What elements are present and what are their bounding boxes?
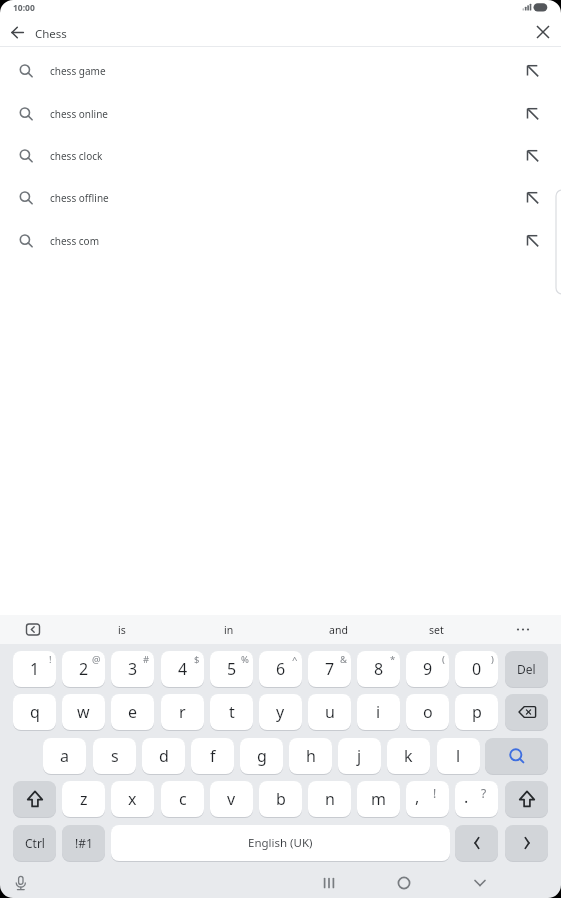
button[interactable]: chess game bbox=[0, 50, 561, 92]
staticText: c bbox=[179, 788, 187, 810]
button[interactable] bbox=[22, 619, 44, 641]
staticText: e bbox=[128, 701, 138, 723]
staticText: ! bbox=[433, 785, 437, 801]
button[interactable]: in bbox=[189, 615, 269, 644]
button[interactable]: . bbox=[455, 781, 498, 817]
button[interactable]: 0 bbox=[455, 651, 498, 687]
button[interactable]: b bbox=[259, 781, 302, 817]
staticText: Chess bbox=[35, 26, 67, 42]
button[interactable]: u bbox=[308, 694, 351, 730]
button[interactable]: chess online bbox=[0, 93, 561, 135]
button[interactable]: m bbox=[357, 781, 400, 817]
button[interactable]: 6 bbox=[259, 651, 302, 687]
staticText: chess clock bbox=[50, 149, 103, 163]
staticText: w bbox=[77, 701, 90, 723]
staticText: ( bbox=[442, 653, 445, 666]
button[interactable]: o bbox=[406, 694, 449, 730]
button[interactable] bbox=[314, 868, 344, 898]
staticText: s bbox=[111, 745, 119, 767]
staticText: 8 bbox=[374, 658, 384, 680]
staticText: 1 bbox=[30, 658, 40, 680]
button[interactable]: j bbox=[338, 738, 381, 774]
staticText: ^ bbox=[292, 653, 298, 666]
staticText: x bbox=[128, 788, 137, 810]
button[interactable]: 3 bbox=[111, 651, 154, 687]
button[interactable] bbox=[485, 738, 548, 774]
button[interactable]: Ctrl bbox=[13, 825, 56, 861]
button[interactable]: p bbox=[455, 694, 498, 730]
staticText: g bbox=[257, 745, 267, 767]
button[interactable]: i bbox=[357, 694, 400, 730]
staticText: 9 bbox=[423, 658, 433, 680]
button[interactable]: g bbox=[240, 738, 283, 774]
button[interactable]: is bbox=[82, 615, 162, 644]
button[interactable]: !#1 bbox=[62, 825, 105, 861]
button[interactable] bbox=[465, 868, 495, 898]
button[interactable]: a bbox=[43, 738, 86, 774]
button[interactable]: and bbox=[298, 615, 378, 644]
button[interactable]: English (UK) bbox=[111, 825, 450, 861]
staticText: chess online bbox=[50, 107, 109, 121]
staticText: # bbox=[143, 653, 150, 666]
staticText: 6 bbox=[276, 658, 286, 680]
button[interactable]: l bbox=[437, 738, 480, 774]
button[interactable]: v bbox=[210, 781, 253, 817]
button[interactable]: chess offline bbox=[0, 177, 561, 219]
button[interactable]: r bbox=[161, 694, 204, 730]
button[interactable]: c bbox=[161, 781, 204, 817]
button[interactable] bbox=[532, 21, 554, 43]
button[interactable]: e bbox=[111, 694, 154, 730]
button[interactable]: k bbox=[387, 738, 430, 774]
staticText: Del bbox=[517, 661, 536, 677]
button[interactable]: 8 bbox=[357, 651, 400, 687]
button[interactable]: 1 bbox=[13, 651, 56, 687]
button[interactable]: 7 bbox=[308, 651, 351, 687]
button[interactable]: 9 bbox=[406, 651, 449, 687]
staticText: p bbox=[472, 701, 482, 723]
staticText: n bbox=[325, 788, 335, 810]
staticText: Ctrl bbox=[25, 835, 45, 851]
button[interactable]: n bbox=[308, 781, 351, 817]
staticText: 5 bbox=[227, 658, 237, 680]
button[interactable] bbox=[6, 21, 29, 44]
button[interactable]: Del bbox=[505, 651, 548, 687]
button[interactable] bbox=[505, 825, 548, 861]
button[interactable]: d bbox=[142, 738, 185, 774]
button[interactable]: 4 bbox=[161, 651, 204, 687]
button[interactable]: y bbox=[259, 694, 302, 730]
staticText: ! bbox=[49, 653, 52, 666]
button[interactable]: chess clock bbox=[0, 135, 561, 177]
button[interactable]: x bbox=[111, 781, 154, 817]
button[interactable]: z bbox=[62, 781, 105, 817]
staticText: chess com bbox=[50, 234, 99, 248]
staticText: and bbox=[329, 623, 348, 637]
staticText: $ bbox=[194, 653, 200, 666]
button[interactable] bbox=[455, 825, 498, 861]
staticText: r bbox=[179, 701, 186, 723]
button[interactable] bbox=[505, 781, 548, 817]
button[interactable]: h bbox=[289, 738, 332, 774]
staticText: is bbox=[118, 623, 126, 637]
staticText: chess game bbox=[50, 64, 106, 78]
button[interactable] bbox=[389, 868, 419, 898]
button[interactable]: chess com bbox=[0, 220, 561, 262]
button[interactable]: , bbox=[406, 781, 449, 817]
staticText: 10:00 bbox=[13, 2, 35, 14]
button[interactable]: s bbox=[93, 738, 136, 774]
button[interactable] bbox=[505, 694, 548, 730]
staticText: 0 bbox=[472, 658, 482, 680]
button[interactable]: set bbox=[396, 615, 476, 644]
staticText: % bbox=[241, 653, 249, 666]
button[interactable]: 2 bbox=[62, 651, 105, 687]
staticText: k bbox=[404, 745, 413, 767]
button[interactable]: q bbox=[13, 694, 56, 730]
button[interactable]: f bbox=[191, 738, 234, 774]
button[interactable]: 5 bbox=[210, 651, 253, 687]
button[interactable] bbox=[6, 868, 36, 898]
button[interactable] bbox=[505, 615, 545, 644]
button[interactable]: t bbox=[210, 694, 253, 730]
button[interactable] bbox=[13, 781, 56, 817]
staticText: f bbox=[210, 745, 216, 767]
button[interactable]: w bbox=[62, 694, 105, 730]
staticText: ) bbox=[491, 653, 494, 666]
